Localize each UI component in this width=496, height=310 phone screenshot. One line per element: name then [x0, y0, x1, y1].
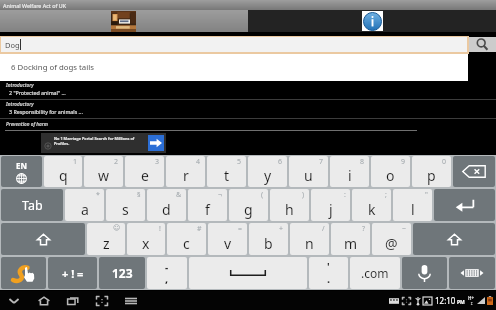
staticText: : — [344, 190, 346, 200]
button[interactable]: - — [147, 257, 187, 289]
button[interactable] — [453, 156, 495, 187]
staticText: - — [165, 260, 169, 274]
button[interactable]: ? — [331, 223, 370, 255]
button[interactable]: ! — [127, 223, 165, 255]
button[interactable]: Introductory — [0, 81, 496, 100]
staticText: Profiles. — [54, 141, 70, 146]
button[interactable]: 9 — [371, 156, 410, 187]
button[interactable]: § — [106, 189, 145, 221]
staticText: EN — [16, 160, 27, 171]
staticText: * — [96, 190, 100, 200]
staticText: No 1 Marriage Portal Search for Millions… — [54, 136, 135, 141]
button[interactable] — [248, 10, 496, 32]
button[interactable]: 123 — [99, 257, 145, 289]
button[interactable]: 6 Docking of dogs tails — [0, 54, 468, 81]
button[interactable]: * — [65, 189, 104, 221]
button[interactable]: Dog — [1, 37, 467, 52]
button[interactable]: " — [393, 189, 432, 221]
button[interactable]: = — [208, 223, 247, 255]
button[interactable]: ; — [352, 189, 391, 221]
staticText: ( — [261, 190, 264, 200]
button[interactable]: 7 — [289, 156, 328, 187]
staticText: m — [344, 234, 358, 253]
staticText: q — [59, 166, 68, 185]
button[interactable]: ¬ — [188, 189, 227, 221]
button[interactable]: 3 — [125, 156, 164, 187]
button[interactable]: Switch keyboard — [449, 257, 495, 289]
staticText: Introductory — [6, 101, 34, 107]
button[interactable]: : — [311, 189, 350, 221]
button[interactable]: 5 — [207, 156, 246, 187]
staticText: f — [205, 200, 210, 219]
button[interactable]: Shift — [413, 223, 495, 255]
staticText: @ — [385, 234, 398, 253]
button[interactable]: 4 — [166, 156, 205, 187]
staticText: = — [238, 224, 243, 234]
button[interactable]: No 1 Marriage Portal Search for Millions… — [41, 133, 166, 153]
button[interactable]: 1 — [44, 156, 82, 187]
button[interactable]: Search — [469, 37, 496, 52]
button[interactable]: Introductory — [0, 100, 496, 119]
button[interactable]: Home — [31, 291, 57, 310]
staticText: z — [103, 234, 110, 253]
button[interactable]: ) — [270, 189, 309, 221]
staticText: , — [165, 271, 169, 286]
button[interactable]: Prevention of harm — [0, 119, 496, 138]
button[interactable]: Open ad — [148, 135, 164, 151]
staticText: # — [197, 224, 202, 234]
button[interactable]: ( — [229, 189, 268, 221]
staticText: 8 — [360, 157, 365, 167]
staticText: v — [224, 234, 232, 253]
staticText: ) — [302, 190, 305, 200]
staticText: / — [322, 224, 325, 234]
staticText: a — [81, 200, 89, 219]
staticText: 4 — [196, 157, 201, 167]
staticText: l — [411, 200, 415, 219]
button[interactable]: Recent apps — [60, 291, 86, 310]
button[interactable]: & — [147, 189, 186, 221]
button[interactable] — [434, 189, 495, 221]
button[interactable]: Voice input — [402, 257, 447, 289]
button[interactable]: + — [249, 223, 288, 255]
staticText: n — [305, 234, 314, 253]
staticText: s — [122, 200, 129, 219]
staticText: ; — [385, 190, 387, 200]
button[interactable]: Tab — [1, 189, 63, 221]
button[interactable]: 0 — [412, 156, 451, 187]
button[interactable]: Swype — [1, 257, 46, 289]
button[interactable]: # — [167, 223, 206, 255]
button[interactable]: Hide keyboard — [1, 291, 27, 310]
button[interactable]: Menu — [118, 291, 144, 310]
button[interactable]: Shift — [1, 223, 85, 255]
button[interactable]: Book cover — [111, 11, 136, 32]
staticText: u — [304, 166, 313, 185]
staticText: 1 — [73, 157, 78, 167]
button[interactable]: 6 — [248, 156, 287, 187]
staticText: 0 — [442, 157, 447, 167]
button[interactable]: ' — [309, 257, 348, 289]
button[interactable]: EN — [1, 156, 42, 187]
staticText: ? — [362, 224, 366, 234]
button[interactable]: / — [290, 223, 329, 255]
staticText: t — [224, 166, 230, 185]
staticText: Animal Welfare Act of UK — [3, 2, 66, 9]
button[interactable]: .com — [350, 257, 400, 289]
staticText: ☺ — [113, 224, 121, 232]
button[interactable]: Screenshot — [89, 291, 115, 310]
staticText: Introductory — [6, 82, 34, 88]
button[interactable] — [189, 257, 307, 289]
staticText: & — [176, 190, 182, 200]
staticText: ' — [327, 260, 330, 274]
button[interactable]: 2 — [84, 156, 123, 187]
staticText: + ! = — [62, 266, 84, 281]
button[interactable]: 8 — [330, 156, 369, 187]
staticText: h — [285, 200, 294, 219]
staticText: g — [244, 200, 253, 219]
staticText: . — [327, 271, 331, 286]
staticText: o — [386, 166, 395, 185]
staticText: 7 — [319, 157, 324, 167]
button[interactable]: ☺ — [87, 223, 125, 255]
button[interactable]: + ! = — [48, 257, 97, 289]
button[interactable]: ~ — [372, 223, 411, 255]
staticText: H+ — [468, 295, 475, 301]
